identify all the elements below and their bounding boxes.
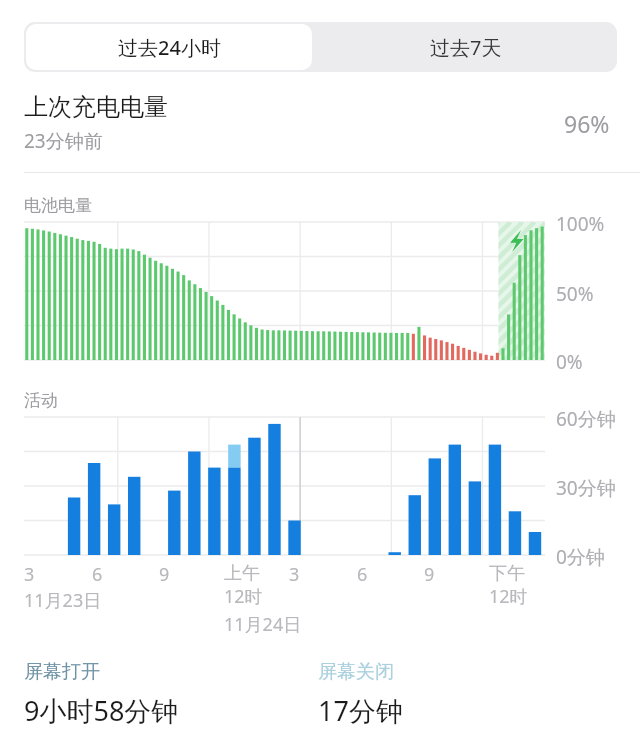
staticText: 下午 12时 bbox=[489, 562, 528, 608]
staticText: 9 bbox=[159, 562, 170, 587]
staticText: 9 bbox=[424, 562, 435, 587]
staticText: 0% bbox=[556, 349, 583, 375]
staticText: 23分钟前 bbox=[24, 128, 103, 154]
staticText: 活动 bbox=[24, 390, 58, 411]
staticText: 上午 12时 bbox=[224, 562, 263, 608]
staticText: 11月23日 bbox=[24, 588, 102, 613]
staticText: 50% bbox=[556, 281, 594, 307]
button[interactable]: 过去24小时 bbox=[26, 24, 312, 70]
staticText: 11月24日 bbox=[224, 612, 302, 637]
staticText: 过去24小时 bbox=[118, 34, 221, 61]
staticText: 3 bbox=[24, 562, 35, 587]
staticText: 上次充电电量 bbox=[24, 92, 168, 122]
staticText: 屏幕打开 bbox=[24, 660, 100, 684]
staticText: 60分钟 bbox=[556, 406, 616, 432]
staticText: 过去7天 bbox=[430, 34, 502, 61]
staticText: 电池电量 bbox=[24, 195, 92, 216]
staticText: 6 bbox=[92, 562, 103, 587]
staticText: 9小时58分钟 bbox=[24, 692, 179, 729]
staticText: 17分钟 bbox=[318, 692, 403, 729]
staticText: 屏幕关闭 bbox=[318, 660, 394, 684]
staticText: 3 bbox=[289, 562, 300, 587]
staticText: 0分钟 bbox=[556, 544, 605, 570]
staticText: 100% bbox=[556, 211, 605, 237]
button[interactable]: 过去7天 bbox=[314, 22, 617, 72]
staticText: 96% bbox=[564, 108, 610, 139]
staticText: 6 bbox=[357, 562, 368, 587]
staticText: 30分钟 bbox=[556, 475, 616, 501]
